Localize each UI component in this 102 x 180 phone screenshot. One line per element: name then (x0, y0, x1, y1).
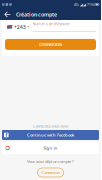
button[interactable]: CONNEXION (5, 39, 96, 50)
staticText: CONNEXION (39, 42, 62, 47)
staticText: Connexion (41, 170, 59, 175)
button[interactable]: +243 (7, 23, 30, 32)
staticText: Numéro de téléphone (33, 21, 70, 26)
staticText: 4G (74, 2, 79, 7)
staticText: +243 (14, 23, 26, 30)
staticText: ◢◢ (80, 2, 86, 7)
button[interactable]: Sign in (2, 142, 99, 154)
staticText: 71% (87, 2, 94, 7)
staticText: Création compte (16, 11, 57, 18)
staticText: Connectez-vous avec (32, 123, 68, 129)
staticText: Sign in (43, 145, 57, 151)
button[interactable]: Continue with Facebook (2, 130, 99, 140)
staticText: Vous avez déjà un compte ? (27, 159, 74, 164)
staticText: f (5, 131, 7, 139)
staticText: Continue with Facebook (27, 132, 74, 138)
button[interactable]: Back (2, 9, 13, 19)
button[interactable]: Connexion (37, 168, 63, 177)
